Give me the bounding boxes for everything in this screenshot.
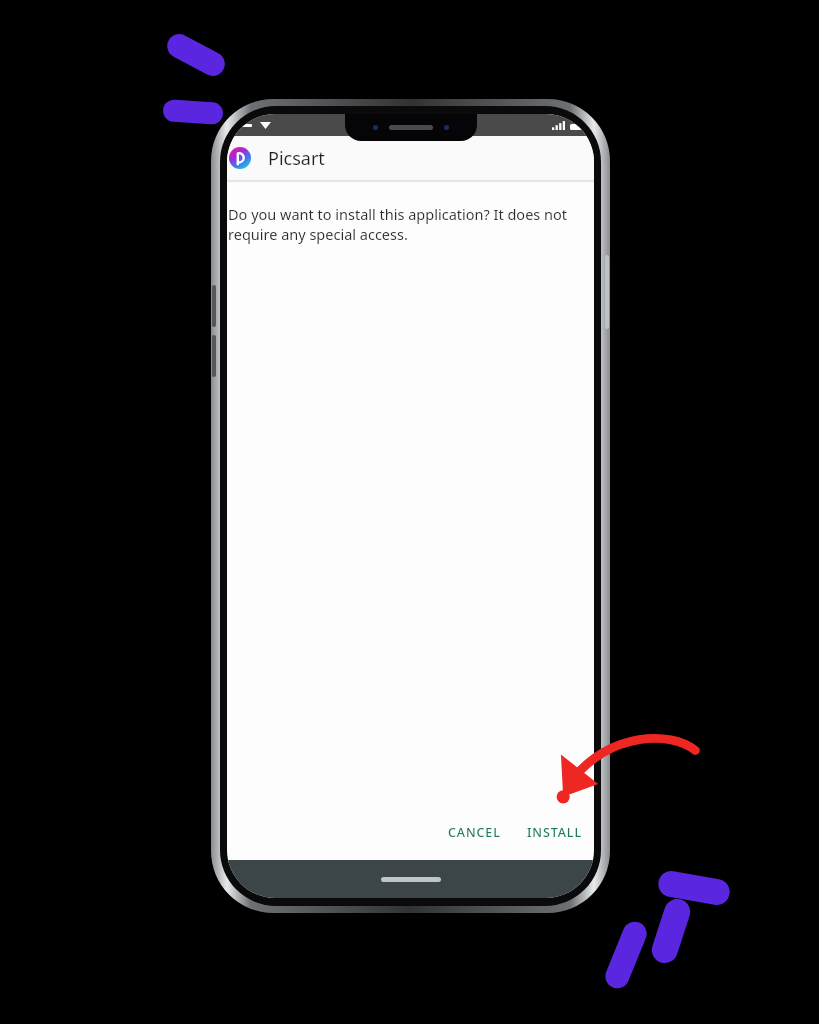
staticText: Do you want to install this application?… bbox=[228, 204, 574, 244]
staticText: Picsart bbox=[268, 146, 325, 171]
button[interactable]: INSTALL bbox=[517, 815, 592, 850]
button[interactable]: Home bbox=[381, 877, 441, 882]
staticText: CANCEL bbox=[448, 824, 501, 841]
button[interactable]: CANCEL bbox=[438, 815, 511, 850]
staticText: INSTALL bbox=[527, 824, 582, 841]
